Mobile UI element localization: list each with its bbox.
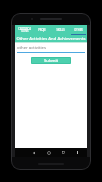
button[interactable]: SKILLS <box>51 25 69 35</box>
button[interactable]: More options <box>71 148 84 157</box>
staticText: CERTIFICA TIONS <box>18 27 31 33</box>
button[interactable]: Back <box>26 148 41 157</box>
button[interactable]: OTHER <box>69 25 87 35</box>
button[interactable]: other activities <box>15 43 87 53</box>
button[interactable]: Recent apps <box>56 148 71 157</box>
staticText: other activities <box>17 45 46 51</box>
staticText: Submit <box>44 58 59 64</box>
button[interactable]: Home <box>41 148 56 157</box>
staticText: Other Activities And Achievements <box>16 36 86 42</box>
button[interactable]: Submit <box>31 57 71 64</box>
button[interactable]: PROJE <box>33 25 51 35</box>
staticText: SKILLS <box>56 28 65 32</box>
staticText: OTHER <box>74 28 83 32</box>
staticText: PROJE <box>38 28 46 32</box>
button[interactable]: CERTIFICA TIONS <box>15 25 33 35</box>
